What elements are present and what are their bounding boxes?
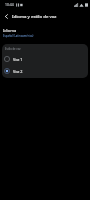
- button[interactable]: Voz 2: [2, 65, 88, 77]
- staticText: Idioma y estilo de voz: [12, 13, 57, 19]
- button[interactable]: Voz 1: [2, 53, 88, 65]
- staticText: 10:44: [5, 2, 14, 7]
- staticText: Estilo de voz: [5, 47, 21, 51]
- staticText: Español (Latinoamérica): [3, 34, 34, 38]
- staticText: Voz 1: [13, 57, 23, 62]
- staticText: Idioma: [3, 28, 17, 33]
- staticText: Voz 2: [13, 69, 23, 74]
- button[interactable]: Back: [0, 10, 12, 22]
- button[interactable]: Idioma: [0, 23, 90, 38]
